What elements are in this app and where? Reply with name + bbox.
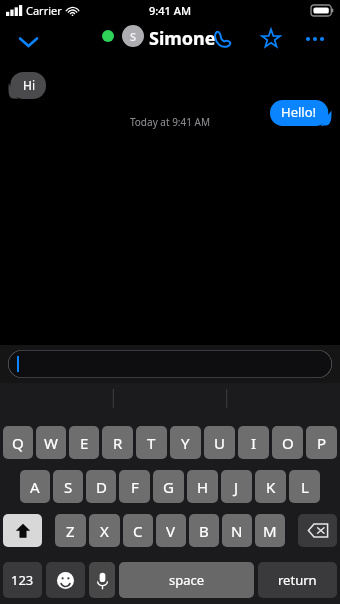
staticText: J [234,477,239,497]
button[interactable]: Back [10,24,46,60]
staticText: L [301,477,309,497]
staticText: X [100,521,109,541]
staticText: I [251,433,257,453]
button[interactable]: U [204,426,235,459]
staticText: T [147,433,156,453]
staticText: F [131,477,139,497]
staticText: 123 [11,571,34,589]
button[interactable]: Emoji [46,562,85,598]
staticText: V [166,521,176,541]
button[interactable]: X [89,514,120,547]
staticText: W [44,433,58,453]
button[interactable]: G [153,470,184,503]
button[interactable]: N [222,514,252,547]
staticText: R [113,433,123,453]
staticText: Carrier [26,3,62,18]
button[interactable]: M [255,514,285,547]
staticText: C [133,521,143,541]
button[interactable]: D [86,470,116,503]
staticText: Z [66,521,75,541]
button[interactable]: Message input [8,350,332,378]
staticText: P [317,433,327,453]
staticText: O [282,433,294,453]
button[interactable]: V [156,514,186,547]
button[interactable]: T [136,426,167,459]
staticText: return [278,571,317,589]
button[interactable]: B [189,514,219,547]
staticText: U [214,433,225,453]
staticText: Hello! [281,103,317,121]
button[interactable]: More options [299,23,331,55]
staticText: E [80,433,89,453]
button[interactable]: I [238,426,269,459]
button[interactable]: C [123,514,153,547]
staticText: A [30,477,40,497]
staticText: space [169,571,205,589]
staticText: G [163,477,174,497]
staticText: K [266,477,276,497]
staticText: Hi [23,77,35,93]
staticText: 9:41 AM [149,3,192,18]
button[interactable]: F [119,470,150,503]
button[interactable]: J [221,470,252,503]
button[interactable]: Favorite [255,23,287,55]
button[interactable]: S [53,470,83,503]
button[interactable]: P [306,426,337,459]
staticText: B [199,521,209,541]
button[interactable]: Call [206,23,238,55]
button[interactable]: K [255,470,286,503]
staticText: M [263,521,277,541]
button[interactable]: Y [170,426,201,459]
staticText: D [96,477,107,497]
button[interactable]: Z [55,514,86,547]
button[interactable]: Hi [8,72,46,99]
button[interactable]: Q [3,426,33,459]
button[interactable]: space [119,562,254,598]
button[interactable]: Contact avatar [122,25,144,47]
button[interactable]: W [36,426,66,459]
staticText: N [231,521,243,541]
button[interactable]: H [187,470,218,503]
button[interactable]: A [20,470,50,503]
staticText: H [197,477,209,497]
button[interactable]: Hello! [270,100,332,126]
button[interactable]: E [69,426,99,459]
button[interactable]: L [289,470,320,503]
staticText: Y [181,433,190,453]
staticText: Today at 9:41 AM [0,115,340,129]
button[interactable]: Dictate [89,562,115,598]
staticText: S [130,29,137,44]
button[interactable]: 123 [3,562,42,598]
button[interactable]: R [102,426,133,459]
staticText: S [64,477,73,497]
staticText: Q [12,433,24,453]
button[interactable]: Shift [3,514,42,547]
button[interactable]: O [272,426,303,459]
button[interactable]: Backspace [298,514,337,547]
button[interactable]: return [258,562,337,598]
button[interactable]: Simone [149,26,216,51]
